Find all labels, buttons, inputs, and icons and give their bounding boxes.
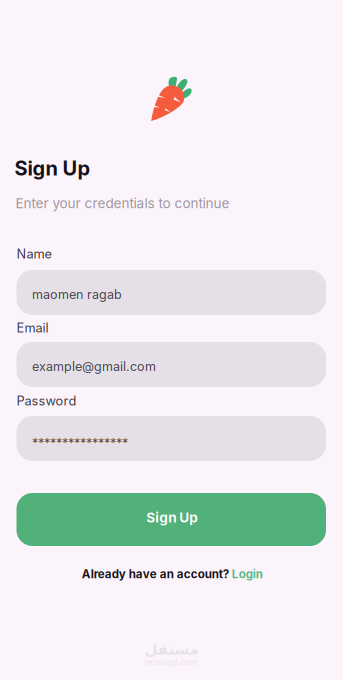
staticText: Already have an account?	[82, 567, 232, 581]
staticText: Sign Up	[14, 156, 90, 180]
staticText: Password	[16, 393, 76, 408]
staticText: Name	[16, 246, 51, 261]
staticText: mostaql.com	[145, 657, 198, 668]
staticText: Email	[16, 320, 48, 335]
button[interactable]: Sign Up	[16, 493, 326, 546]
staticText: maomen ragab	[32, 287, 122, 302]
button[interactable]: example@gmail.com	[16, 342, 326, 387]
staticText: مستقل	[144, 641, 198, 658]
staticText: Sign Up	[146, 509, 198, 526]
button[interactable]: ****************	[16, 416, 326, 461]
button[interactable]: Login	[232, 567, 263, 581]
button[interactable]: maomen ragab	[16, 270, 326, 315]
staticText: Login	[232, 567, 263, 581]
staticText: Enter your credentials to continue	[15, 195, 229, 211]
staticText: example@gmail.com	[32, 359, 156, 374]
staticText: ****************	[32, 436, 128, 451]
